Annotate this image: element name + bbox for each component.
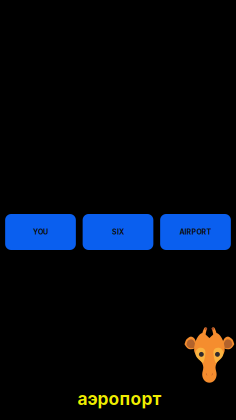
- staticText: AIRPORT: [179, 228, 211, 236]
- staticText: SIX: [112, 228, 124, 236]
- button[interactable]: AIRPORT: [160, 214, 231, 250]
- button[interactable]: SIX: [83, 214, 153, 250]
- staticText: аэропорт: [78, 388, 162, 409]
- button[interactable]: YOU: [5, 214, 76, 250]
- staticText: YOU: [33, 228, 48, 236]
